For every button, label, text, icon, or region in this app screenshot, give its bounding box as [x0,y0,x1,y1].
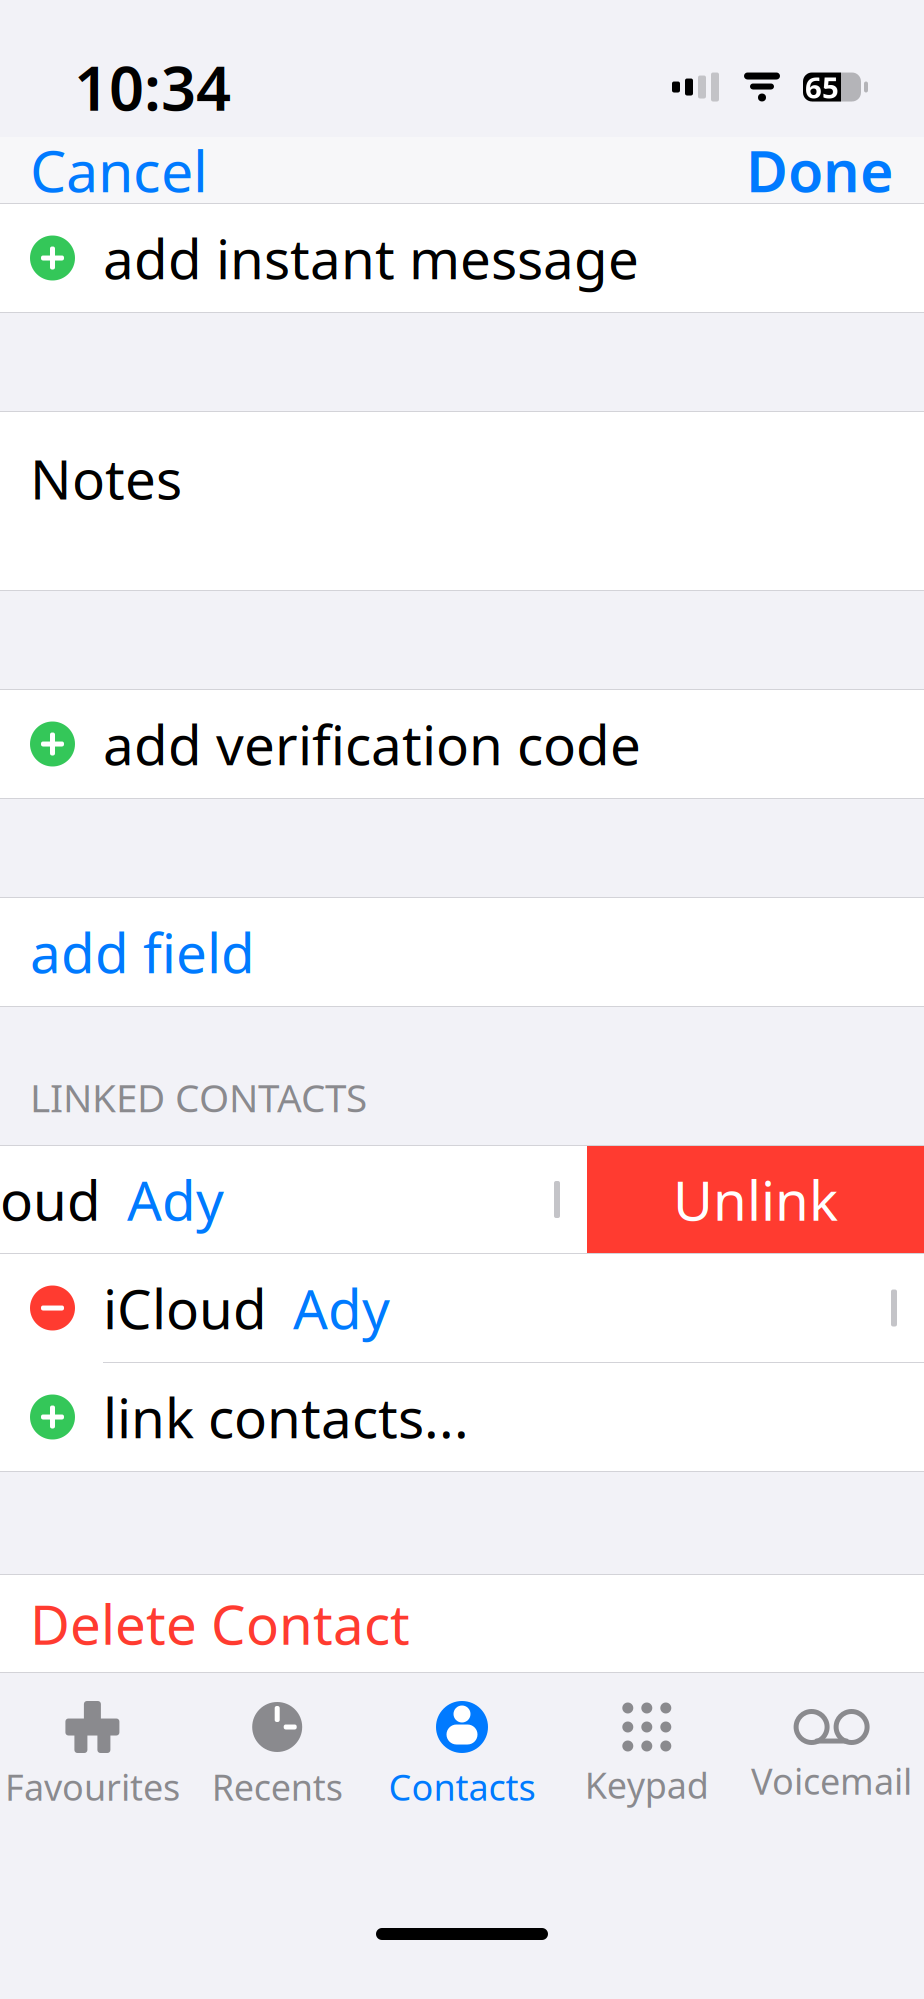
button[interactable]: Unlink [587,1146,924,1253]
button[interactable]: add instant message [0,204,924,312]
staticText: 65 [805,67,839,106]
staticText: Cancel [30,132,208,208]
staticText: Done [746,132,894,208]
staticText: LINKED CONTACTS [30,1072,367,1123]
button[interactable]: Cancel [0,122,232,218]
staticText: Keypad [585,1761,709,1809]
staticText: add verification code [103,708,641,780]
staticText: add instant message [103,222,639,294]
button[interactable]: link contacts... [0,1363,924,1471]
staticText: Ady [293,1272,390,1344]
button[interactable]: Favourites [0,1673,185,1811]
staticText: iCloud [103,1272,267,1344]
staticText: Voicemail [751,1757,912,1805]
staticText: Ady [127,1163,224,1236]
staticText: 10:34 [74,46,231,128]
staticText: Notes [30,442,182,515]
staticText: Favourites [5,1763,180,1811]
button[interactable]: Delete Contact [0,1575,924,1672]
button[interactable]: add field [0,898,924,1006]
button[interactable]: add verification code [0,690,924,798]
staticText: link contacts... [103,1381,469,1453]
staticText: add field [30,916,255,988]
staticText: Delete Contact [30,1587,410,1660]
staticText: Contacts [388,1763,535,1811]
button[interactable]: Recents [185,1673,370,1811]
button[interactable]: Voicemail [739,1679,924,1805]
button[interactable]: Keypad [554,1675,739,1809]
button[interactable]: oud [0,1146,587,1253]
staticText: oud [0,1163,101,1236]
button[interactable]: Contacts [370,1673,554,1811]
staticText: Recents [212,1763,343,1811]
button[interactable]: Done [722,122,924,218]
button[interactable]: iCloud [0,1254,924,1362]
staticText: Unlink [673,1163,838,1236]
